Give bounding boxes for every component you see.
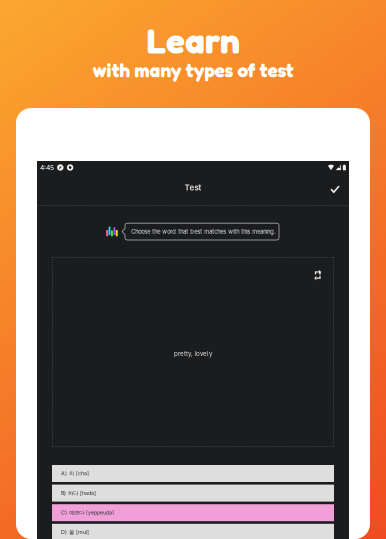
- staticText: Test: [184, 183, 201, 192]
- staticText: A) 차 [cha]: [61, 470, 89, 477]
- button[interactable]: Submit answer: [321, 175, 349, 203]
- button[interactable]: D) 물 [mul]: [52, 524, 334, 539]
- staticText: Learn: [146, 19, 240, 62]
- button[interactable]: Shuffle answers: [309, 266, 327, 284]
- staticText: Choose the word that best matches with t…: [131, 228, 276, 235]
- staticText: with many types of test: [92, 59, 293, 82]
- staticText: B) 하다 [hada]: [61, 490, 96, 496]
- button[interactable]: B) 하다 [hada]: [52, 485, 334, 502]
- button[interactable]: A) 차 [cha]: [52, 465, 334, 482]
- button[interactable]: C) 예쁘다 [yeppeuda]: [52, 504, 334, 521]
- staticText: 4:45: [40, 163, 53, 172]
- staticText: C) 예쁘다 [yeppeuda]: [61, 509, 114, 516]
- staticText: D) 물 [mul]: [61, 529, 89, 536]
- staticText: pretty, lovely: [174, 350, 212, 357]
